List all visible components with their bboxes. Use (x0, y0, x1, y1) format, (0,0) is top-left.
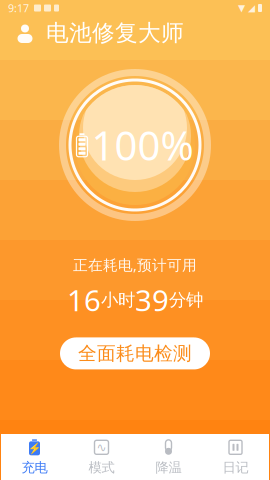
staticText: ⚡ (28, 442, 41, 454)
staticText: 全面耗电检测 (78, 342, 192, 365)
button[interactable]: ⚡ (1, 434, 68, 480)
staticText: 39 (135, 280, 169, 319)
staticText: 16 (67, 280, 101, 319)
staticText: 分钟 (169, 289, 203, 311)
staticText: 日记 (222, 459, 248, 476)
staticText: 降温 (155, 459, 181, 476)
staticText: 电池修复大师 (46, 19, 184, 47)
button[interactable]: 全面耗电检测 (60, 337, 210, 369)
staticText: ◢ (248, 3, 255, 13)
button[interactable]: 日记 (202, 434, 269, 480)
staticText: 正在耗电,预计可用 (73, 255, 197, 274)
staticText: ▼ (238, 3, 245, 13)
staticText: 9:17 (8, 1, 29, 15)
staticText: 小时 (101, 289, 135, 311)
staticText: 模式 (88, 459, 114, 476)
staticText: 充电 (21, 459, 47, 476)
button[interactable]: 降温 (135, 434, 202, 480)
button[interactable]: Account (12, 20, 38, 46)
staticText: 100% (91, 118, 193, 171)
button[interactable]: ∿ (68, 434, 135, 480)
staticText: ∿ (96, 440, 106, 454)
